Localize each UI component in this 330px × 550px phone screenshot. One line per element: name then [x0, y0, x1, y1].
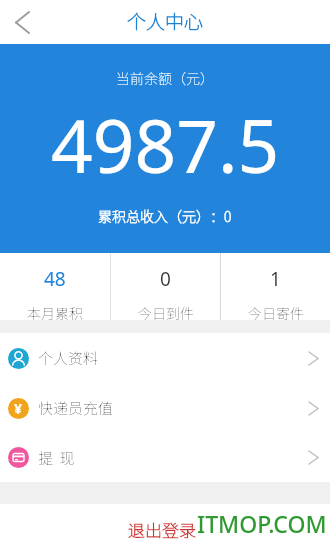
- staticText: 1: [270, 266, 281, 292]
- staticText: 当前余额（元）: [116, 68, 214, 88]
- staticText: 快递员充值: [38, 397, 114, 419]
- button[interactable]: ¥: [0, 383, 330, 433]
- button[interactable]: 0: [111, 253, 220, 320]
- button[interactable]: [0, 0, 44, 44]
- staticText: 48: [44, 266, 66, 292]
- staticText: 今日寄件: [248, 303, 304, 320]
- button[interactable]: 个人资料: [0, 333, 330, 383]
- staticText: ¥: [14, 399, 23, 418]
- staticText: 本月累积: [27, 303, 83, 320]
- button[interactable]: 退出登录: [0, 504, 330, 550]
- staticText: 个人中心: [127, 7, 204, 35]
- staticText: 4987.5: [51, 95, 280, 194]
- staticText: 累积总收入（元）：0: [98, 206, 232, 226]
- staticText: 退出登录: [128, 517, 196, 542]
- staticText: ITMOP.COM: [197, 508, 327, 539]
- staticText: 今日到件: [138, 303, 194, 320]
- button[interactable]: 48: [0, 253, 110, 320]
- staticText: 个人资料: [38, 347, 99, 369]
- button[interactable]: 1: [221, 253, 330, 320]
- staticText: 0: [160, 266, 171, 292]
- staticText: 提 现: [38, 447, 75, 469]
- button[interactable]: 提 现: [0, 433, 330, 482]
